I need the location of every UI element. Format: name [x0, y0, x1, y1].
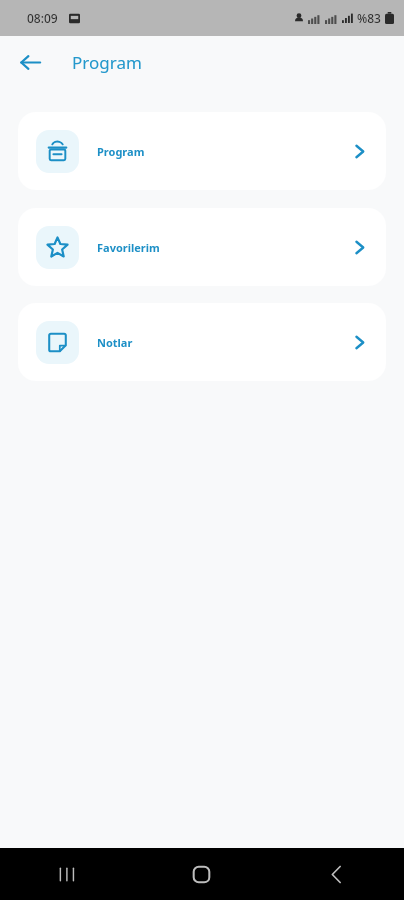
staticText: Program [97, 144, 145, 159]
staticText: 08:09 [27, 10, 58, 26]
button[interactable]: Program [18, 112, 386, 190]
staticText: %83 [357, 10, 381, 26]
staticText: Program [72, 51, 142, 74]
button[interactable]: Recent apps [0, 848, 134, 900]
button[interactable]: Back [10, 42, 50, 82]
button[interactable]: Notlar [18, 303, 386, 381]
button[interactable]: Back [269, 848, 404, 900]
button[interactable]: Favorilerim [18, 208, 386, 286]
staticText: Notlar [97, 335, 133, 350]
staticText: Favorilerim [97, 240, 160, 255]
button[interactable]: Home [134, 848, 269, 900]
